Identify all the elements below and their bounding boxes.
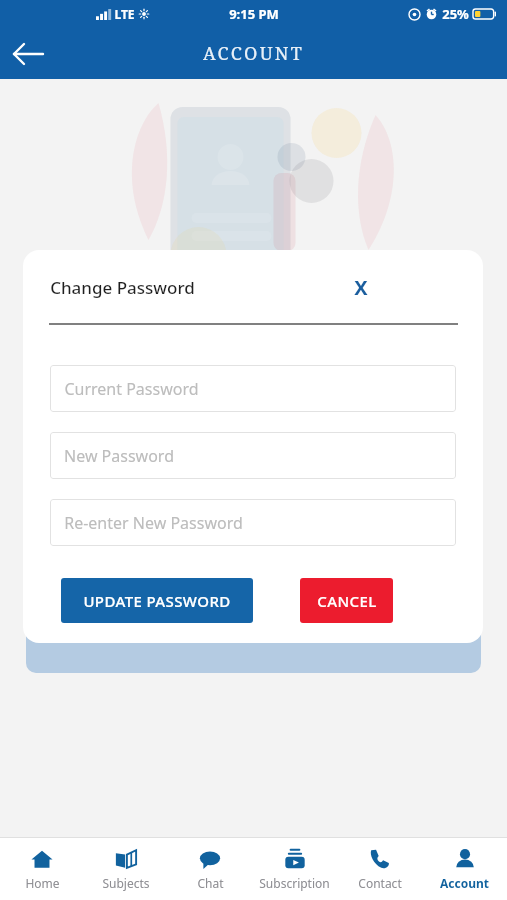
staticText: 25%: [442, 5, 469, 23]
staticText: Change Password: [50, 276, 195, 299]
staticText: Re-enter New Password: [64, 512, 243, 534]
staticText: 9:15 PM: [229, 5, 279, 23]
button[interactable]: UPDATE PASSWORD: [61, 578, 253, 623]
staticText: New Password: [64, 445, 174, 467]
staticText: Chat: [197, 875, 224, 891]
button[interactable]: New Password: [50, 432, 456, 479]
button[interactable]: CANCEL: [300, 578, 393, 623]
staticText: Subjects: [102, 875, 150, 891]
button[interactable]: Subjects: [84, 838, 168, 900]
button[interactable]: Account: [422, 838, 507, 900]
button[interactable]: Current Password: [50, 365, 456, 412]
staticText: Account: [440, 875, 489, 891]
button[interactable]: Chat: [168, 838, 252, 900]
staticText: Current Password: [64, 378, 199, 400]
button[interactable]: Subscription: [252, 838, 337, 900]
staticText: Home: [25, 875, 60, 891]
button[interactable]: Close: [339, 265, 383, 309]
button[interactable]: Home: [0, 838, 84, 900]
staticText: X: [354, 274, 368, 301]
staticText: ACCOUNT: [203, 41, 304, 66]
staticText: LTE: [114, 6, 135, 22]
staticText: UPDATE PASSWORD: [83, 591, 231, 611]
button[interactable]: Re-enter New Password: [50, 499, 456, 546]
button[interactable]: Back: [6, 32, 50, 76]
staticText: CANCEL: [317, 591, 377, 611]
button[interactable]: Contact: [337, 838, 422, 900]
staticText: Subscription: [259, 875, 330, 891]
staticText: Contact: [358, 875, 402, 891]
